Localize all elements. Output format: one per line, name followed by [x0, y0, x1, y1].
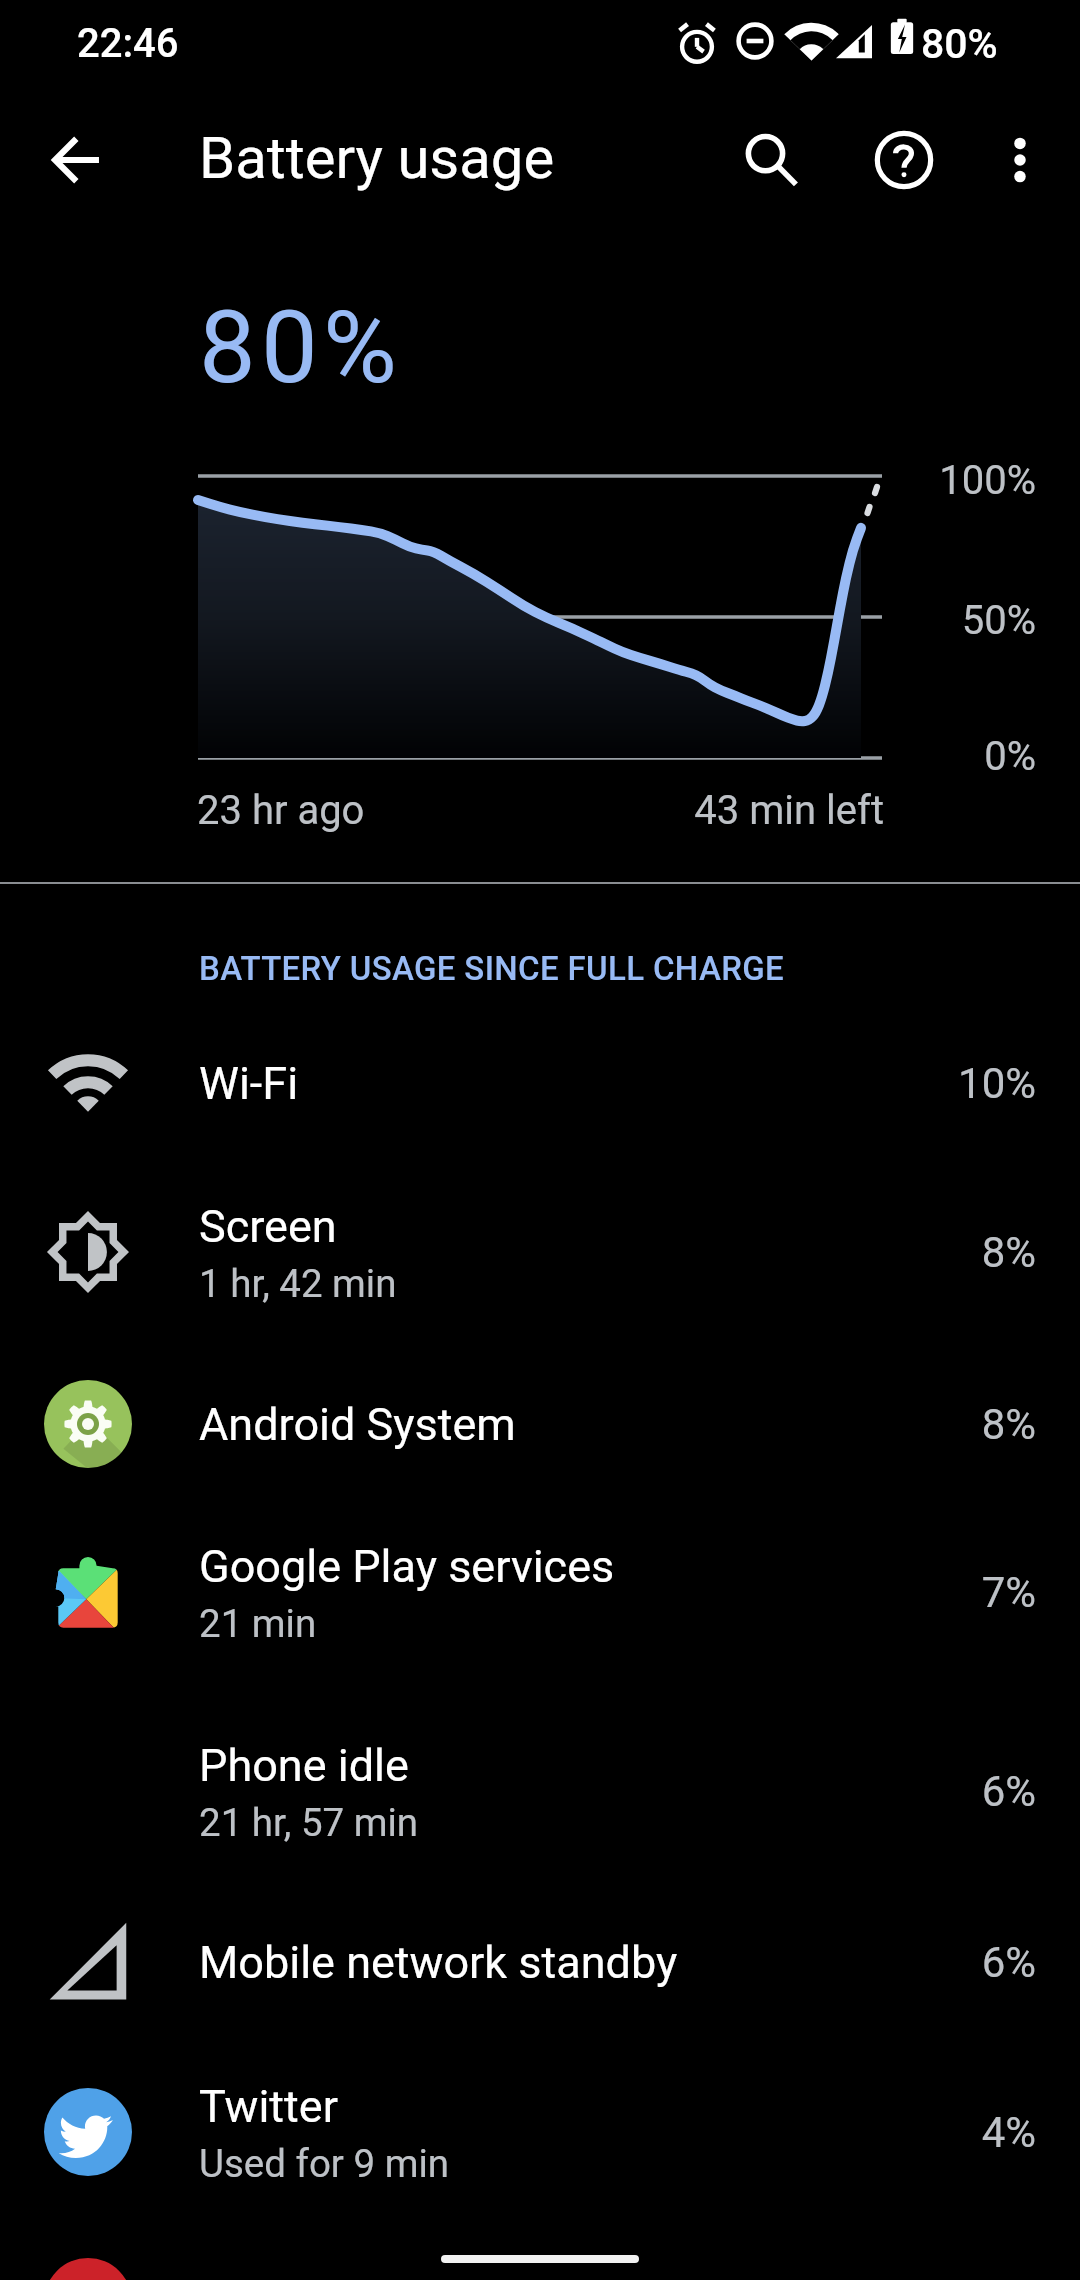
- staticText: 0%: [836, 733, 1036, 780]
- button[interactable]: Mobile network standby: [0, 1878, 1080, 2046]
- staticText: 8%: [916, 1228, 1036, 1277]
- staticText: 6%: [916, 1767, 1036, 1816]
- staticText: 43 min left: [684, 787, 884, 834]
- staticText: Phone idle: [199, 1739, 409, 1792]
- staticText: Wi-Fi: [199, 1057, 299, 1110]
- staticText: 7%: [916, 1568, 1036, 1617]
- staticText: 8%: [916, 1400, 1036, 1449]
- staticText: Battery usage: [199, 124, 555, 192]
- button[interactable]: Wi-Fi: [0, 999, 1080, 1167]
- button[interactable]: Help: [851, 107, 957, 213]
- staticText: 10%: [916, 1059, 1036, 1108]
- staticText: Google Play services: [199, 1540, 615, 1593]
- staticText: Twitter: [199, 2080, 338, 2133]
- staticText: Used for 9 min: [199, 2141, 450, 2186]
- button[interactable]: Screen: [0, 1168, 1080, 1336]
- button[interactable]: Phone idle: [0, 1707, 1080, 1875]
- staticText: 50%: [836, 597, 1036, 644]
- button[interactable]: Google Play services: [0, 1508, 1080, 1676]
- staticText: 4%: [916, 2108, 1036, 2157]
- staticText: 21 min: [199, 1601, 317, 1646]
- staticText: Screen: [199, 1200, 337, 1253]
- button[interactable]: Back: [24, 107, 130, 213]
- staticText: Mobile network standby: [199, 1936, 678, 1989]
- button[interactable]: Search: [718, 107, 824, 213]
- staticText: 80%: [199, 288, 403, 406]
- button[interactable]: More options: [967, 107, 1073, 213]
- staticText: 6%: [916, 1938, 1036, 1987]
- staticText: 80%: [921, 20, 998, 68]
- staticText: 23 hr ago: [197, 787, 365, 834]
- staticText: 21 hr, 57 min: [199, 1800, 419, 1845]
- staticText: Android System: [199, 1398, 516, 1451]
- staticText: BATTERY USAGE SINCE FULL CHARGE: [199, 949, 785, 988]
- staticText: 100%: [836, 457, 1036, 504]
- button[interactable]: Twitter: [0, 2048, 1080, 2216]
- staticText: 1 hr, 42 min: [199, 1261, 397, 1306]
- staticText: 22:46: [77, 20, 179, 67]
- button[interactable]: Android System: [0, 1340, 1080, 1508]
